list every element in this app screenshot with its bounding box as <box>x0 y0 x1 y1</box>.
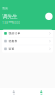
staticText: 138****8000 <box>2 21 20 25</box>
staticText: 优惠券 <box>9 39 18 43</box>
staticText: 我的 <box>40 93 42 95</box>
button[interactable]: 优惠券 <box>2 37 53 45</box>
button[interactable]: 设置 <box>2 45 53 53</box>
staticText: 设置 <box>9 47 15 50</box>
staticText: 调先生 <box>2 13 17 20</box>
staticText: 我的 <box>2 7 8 10</box>
button[interactable]: 我的 <box>27 88 55 100</box>
button[interactable]: 我的订单 <box>2 30 53 37</box>
staticText: 首页 <box>13 93 15 95</box>
staticText: 我的订单 <box>9 32 21 35</box>
button[interactable]: 首页 <box>0 88 27 100</box>
